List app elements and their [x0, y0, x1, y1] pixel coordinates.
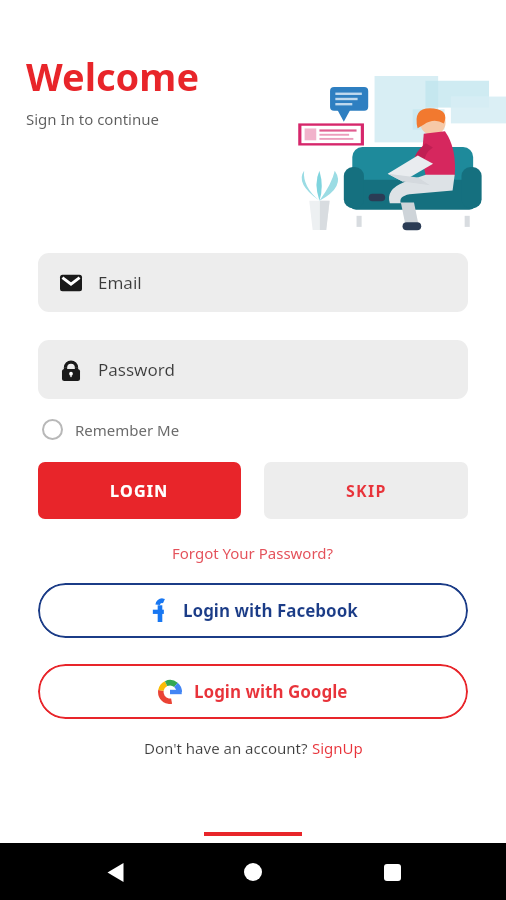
button[interactable]: LOGIN [38, 462, 241, 519]
button[interactable]: Remember Me [40, 413, 182, 446]
button[interactable]: Email [38, 253, 468, 312]
staticText: Sign In to continue [26, 109, 159, 129]
button[interactable]: Login with Facebook [38, 583, 468, 638]
button[interactable]: Recent apps [368, 848, 416, 896]
button[interactable]: SKIP [264, 462, 468, 519]
staticText: Login with Facebook [183, 599, 358, 622]
staticText: Password [98, 358, 175, 381]
button[interactable]: Forgot Your Password? [164, 539, 342, 567]
staticText: Don't have an account? [144, 738, 312, 758]
staticText: Remember Me [75, 420, 180, 440]
staticText: SKIP [346, 480, 387, 502]
button[interactable]: SignUp [312, 738, 363, 758]
staticText: Email [98, 271, 142, 294]
button[interactable]: Password [38, 340, 468, 399]
button[interactable]: Back [91, 848, 139, 896]
staticText: Welcome [26, 50, 200, 102]
staticText: Login with Google [194, 680, 348, 703]
button[interactable]: Login with Google [38, 664, 468, 719]
staticText: LOGIN [110, 480, 169, 502]
button[interactable]: Home [229, 848, 277, 896]
